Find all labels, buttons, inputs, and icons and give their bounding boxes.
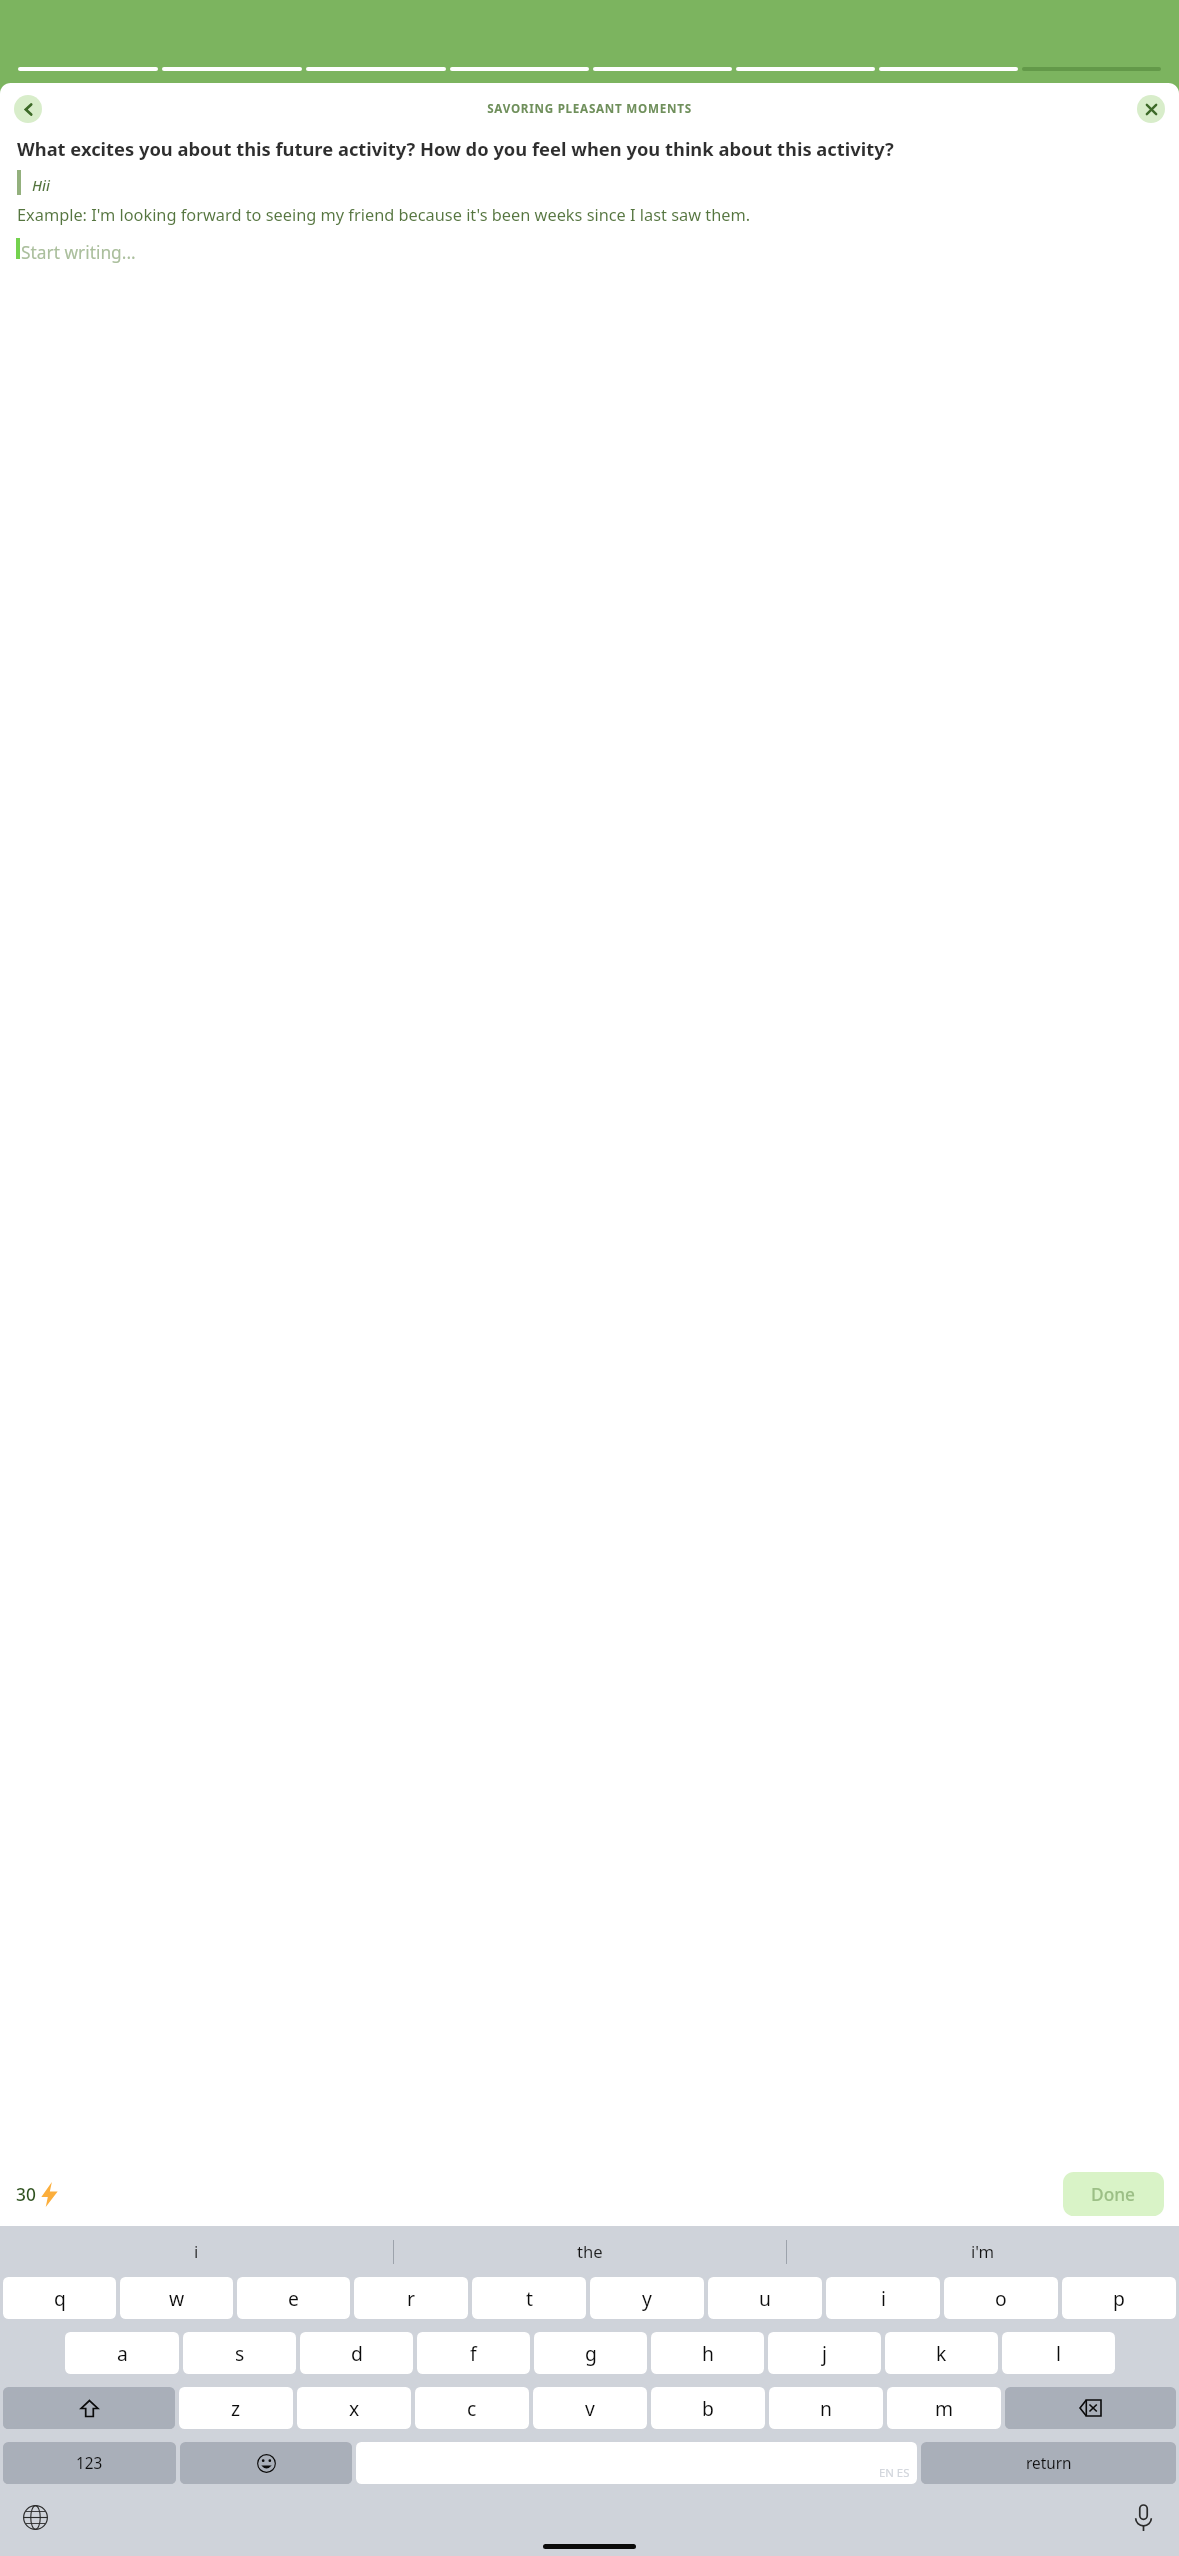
staticText: q — [54, 2285, 66, 2311]
button[interactable]: y — [590, 2277, 704, 2319]
button[interactable]: q — [3, 2277, 116, 2319]
staticText: return — [1026, 2453, 1072, 2474]
staticText: Done — [1091, 2182, 1136, 2206]
staticText: t — [526, 2285, 533, 2311]
staticText: f — [470, 2340, 477, 2366]
button[interactable]: i — [826, 2277, 940, 2319]
button[interactable]: o — [944, 2277, 1058, 2319]
button[interactable]: Shift — [3, 2387, 175, 2429]
button[interactable]: the — [394, 2226, 786, 2277]
button[interactable]: c — [415, 2387, 529, 2429]
staticText: i — [881, 2285, 886, 2311]
staticText: e — [288, 2285, 299, 2311]
button[interactable]: m — [887, 2387, 1001, 2429]
staticText: SAVORING PLEASANT MOMENTS — [487, 101, 692, 117]
button[interactable]: w — [120, 2277, 233, 2319]
staticText: u — [759, 2285, 771, 2311]
staticText: g — [585, 2340, 597, 2366]
button[interactable]: Close — [1137, 95, 1165, 123]
staticText: w — [169, 2285, 185, 2311]
button[interactable]: u — [708, 2277, 822, 2319]
staticText: y — [642, 2285, 652, 2311]
staticText: s — [235, 2340, 245, 2366]
staticText: a — [117, 2340, 128, 2366]
button[interactable]: b — [651, 2387, 765, 2429]
staticText: Example: I'm looking forward to seeing m… — [17, 204, 751, 226]
button[interactable]: Backspace — [1005, 2387, 1176, 2429]
button[interactable]: r — [354, 2277, 468, 2319]
button[interactable]: Change language — [19, 2501, 52, 2534]
staticText: v — [585, 2395, 595, 2421]
button[interactable]: return — [921, 2442, 1176, 2484]
button[interactable]: s — [183, 2332, 296, 2374]
button[interactable]: Back — [14, 95, 42, 123]
staticText: p — [1113, 2285, 1125, 2311]
staticText: r — [407, 2285, 415, 2311]
staticText: 30 — [16, 2182, 36, 2206]
button[interactable]: v — [533, 2387, 647, 2429]
staticText: c — [467, 2395, 477, 2421]
button[interactable]: x — [297, 2387, 411, 2429]
button[interactable]: z — [179, 2387, 293, 2429]
button[interactable]: k — [885, 2332, 998, 2374]
staticText: i — [194, 2240, 199, 2263]
button[interactable]: i'm — [787, 2226, 1179, 2277]
button[interactable]: d — [300, 2332, 413, 2374]
staticText: i'm — [971, 2240, 995, 2263]
button[interactable]: p — [1062, 2277, 1176, 2319]
staticText: o — [995, 2285, 1007, 2311]
button[interactable]: t — [472, 2277, 586, 2319]
staticText: z — [231, 2395, 241, 2421]
staticText: n — [820, 2395, 832, 2421]
button[interactable]: 123 — [3, 2442, 176, 2484]
staticText: d — [351, 2340, 363, 2366]
button[interactable]: Emoji — [180, 2442, 352, 2484]
staticText: m — [935, 2395, 954, 2421]
button[interactable]: i — [0, 2226, 393, 2277]
staticText: Hii — [32, 175, 50, 195]
button[interactable]: l — [1002, 2332, 1115, 2374]
button[interactable]: f — [417, 2332, 530, 2374]
staticText: 123 — [76, 2453, 103, 2474]
staticText: What excites you about this future activ… — [17, 136, 894, 161]
button[interactable]: n — [769, 2387, 883, 2429]
staticText: l — [1056, 2340, 1061, 2366]
button[interactable]: j — [768, 2332, 881, 2374]
button[interactable]: g — [534, 2332, 647, 2374]
staticText: b — [702, 2395, 714, 2421]
staticText: EN ES — [879, 2465, 910, 2480]
staticText: k — [936, 2340, 947, 2366]
button[interactable]: Done — [1063, 2172, 1164, 2216]
button[interactable]: h — [651, 2332, 764, 2374]
button[interactable]: a — [65, 2332, 179, 2374]
button[interactable]: e — [237, 2277, 350, 2319]
staticText: the — [577, 2240, 603, 2263]
button[interactable]: Voice input — [1127, 2501, 1160, 2534]
staticText: Start writing... — [21, 240, 136, 264]
staticText: x — [349, 2395, 360, 2421]
staticText: j — [822, 2340, 827, 2366]
staticText: h — [702, 2340, 714, 2366]
